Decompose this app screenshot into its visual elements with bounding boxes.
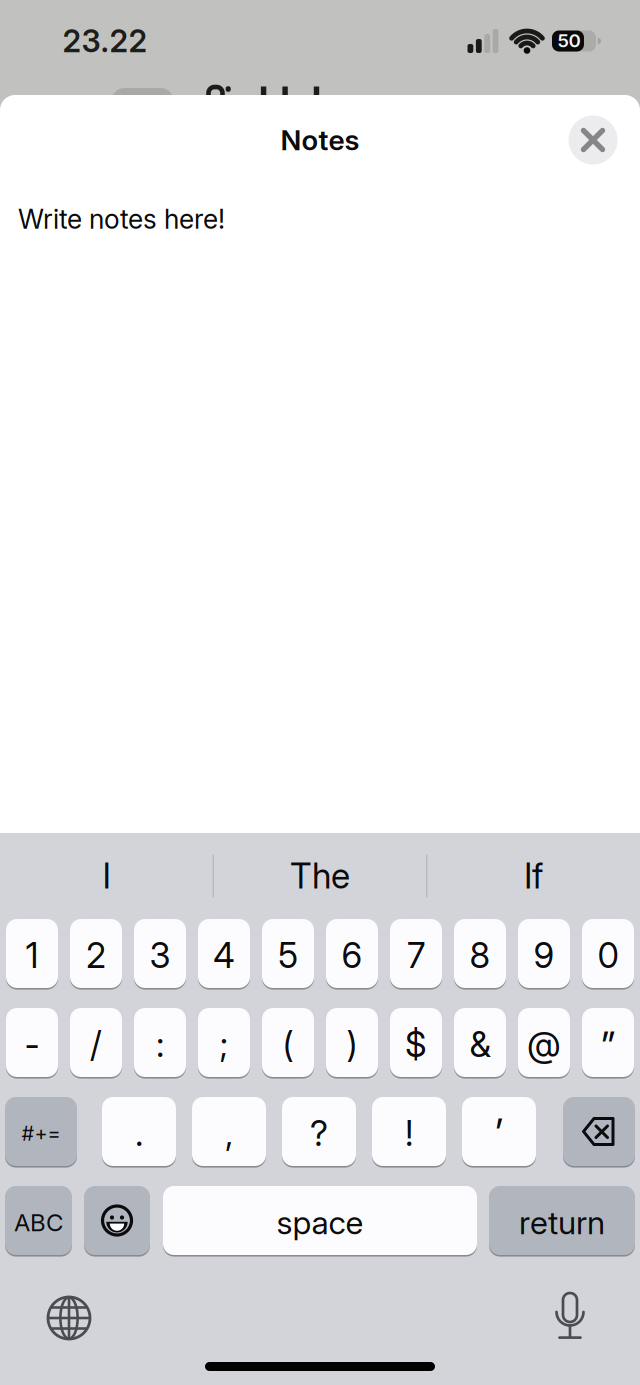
staticText: . [135,1113,143,1154]
button[interactable]: & [454,1008,506,1077]
button[interactable]: $ [390,1008,442,1077]
staticText: , [225,1113,233,1154]
staticText: space [276,1204,363,1241]
button[interactable]: Emoji [84,1186,150,1255]
staticText: ( [282,1024,293,1065]
button[interactable]: 4 [198,919,250,988]
staticText: / [90,1024,102,1065]
staticText: ? [310,1113,328,1154]
staticText: 6 [341,935,362,976]
staticText: 5 [278,935,298,976]
staticText: 1 [25,935,38,976]
button[interactable]: 3 [134,919,186,988]
button[interactable]: @ [518,1008,570,1077]
button[interactable]: 7 [390,919,442,988]
button[interactable]: ” [582,1008,634,1077]
staticText: 50 [557,29,580,51]
staticText: I [102,856,110,896]
staticText: The [290,856,350,896]
staticText: If [524,856,543,896]
button[interactable]: Next keyboard [46,1295,92,1341]
button[interactable]: return [489,1186,635,1255]
button[interactable]: - [6,1008,58,1077]
button[interactable]: : [134,1008,186,1077]
staticText: 9 [533,935,554,976]
button[interactable]: ? [282,1097,356,1166]
button[interactable]: ’ [462,1097,536,1166]
button[interactable]: , [192,1097,266,1166]
button[interactable]: ! [372,1097,446,1166]
button[interactable]: If [430,837,636,915]
staticText: 0 [597,935,618,976]
button[interactable]: Dictation [556,1293,584,1343]
button[interactable]: 8 [454,919,506,988]
button[interactable]: 1 [6,919,58,988]
button[interactable]: #+= [5,1097,77,1166]
button[interactable]: Close [568,115,617,164]
button[interactable]: ABC [5,1186,72,1255]
staticText: Notes [280,123,359,156]
staticText: return [519,1204,605,1241]
staticText: ” [601,1022,615,1071]
staticText: #+= [21,1122,60,1145]
staticText: @ [527,1024,561,1065]
staticText: 23.22 [62,23,147,59]
button[interactable]: ) [326,1008,378,1077]
staticText: 2 [86,935,106,976]
staticText: ’ [495,1109,503,1158]
staticText: 4 [213,935,235,976]
staticText: ABC [14,1208,63,1237]
button[interactable]: 9 [518,919,570,988]
button[interactable]: space [163,1186,477,1255]
staticText: 7 [407,935,425,976]
staticText: 3 [149,935,170,976]
button[interactable]: The [217,837,423,915]
staticText: ) [346,1024,357,1065]
button[interactable]: ( [262,1008,314,1077]
button[interactable]: I [3,837,209,915]
staticText: : [156,1024,164,1065]
staticText: & [469,1024,490,1065]
staticText: Write notes here! [18,203,225,235]
staticText: $ [405,1024,427,1065]
button[interactable]: 2 [70,919,122,988]
button[interactable]: 6 [326,919,378,988]
button[interactable]: 5 [262,919,314,988]
button[interactable]: Delete [563,1097,635,1166]
staticText: - [24,1024,39,1065]
button[interactable]: ; [198,1008,250,1077]
staticText: ; [219,1024,228,1065]
button[interactable]: . [102,1097,176,1166]
button[interactable]: 0 [582,919,634,988]
staticText: ! [405,1113,413,1154]
staticText: 8 [469,935,490,976]
button[interactable]: / [70,1008,122,1077]
